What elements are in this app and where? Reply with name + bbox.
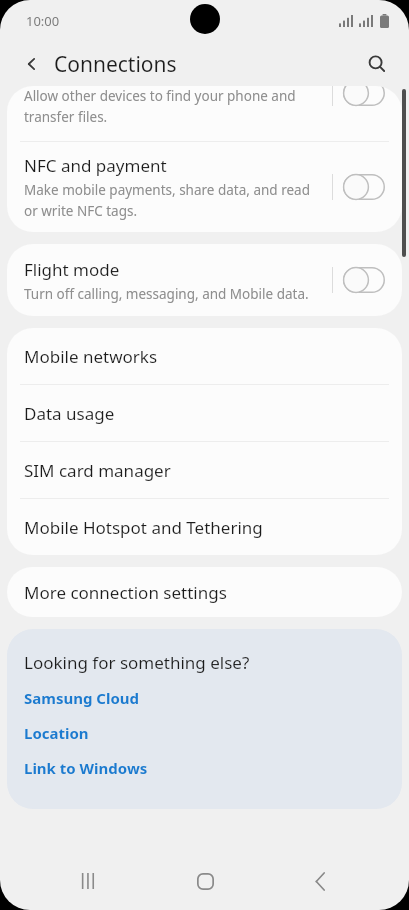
staticText: NFC and payment xyxy=(24,154,167,177)
staticText: 10:00 xyxy=(26,12,60,30)
button[interactable]: SIM card manager xyxy=(7,442,402,498)
button[interactable]: Location xyxy=(7,715,402,750)
staticText: Make mobile payments, share data, and re… xyxy=(24,181,310,199)
button[interactable]: Flight mode xyxy=(7,244,402,316)
staticText: Link to Windows xyxy=(24,758,148,778)
button[interactable]: Recents xyxy=(63,855,115,907)
staticText: Location xyxy=(24,723,89,743)
button[interactable]: Samsung Cloud xyxy=(7,680,402,715)
button[interactable]: Data usage xyxy=(7,385,402,441)
staticText: Mobile networks xyxy=(24,345,158,368)
button[interactable]: Toggle xyxy=(332,166,385,208)
staticText: or write NFC tags. xyxy=(24,202,138,220)
button[interactable]: Search xyxy=(355,42,399,86)
button[interactable]: Allow other devices to find your phone a… xyxy=(7,86,402,141)
staticText: Samsung Cloud xyxy=(24,688,139,708)
button[interactable]: NFC and payment xyxy=(7,142,402,232)
staticText: Looking for something else? xyxy=(24,651,250,674)
button[interactable]: More connection settings xyxy=(7,567,402,617)
staticText: Connections xyxy=(54,50,177,79)
staticText: Turn off calling, messaging, and Mobile … xyxy=(24,285,309,303)
button[interactable]: Link to Windows xyxy=(7,750,402,785)
button[interactable]: Home xyxy=(179,855,231,907)
staticText: SIM card manager xyxy=(24,459,171,482)
staticText: Flight mode xyxy=(24,258,120,281)
button[interactable]: Toggle xyxy=(332,259,385,301)
staticText: Data usage xyxy=(24,402,115,425)
button[interactable]: Back xyxy=(10,42,54,86)
button[interactable]: Mobile Hotspot and Tethering xyxy=(7,499,402,555)
staticText: Allow other devices to find your phone a… xyxy=(24,87,296,105)
staticText: transfer files. xyxy=(24,108,108,126)
button[interactable]: Back xyxy=(294,855,346,907)
staticText: Mobile Hotspot and Tethering xyxy=(24,516,263,539)
button[interactable]: Toggle xyxy=(332,86,385,114)
staticText: More connection settings xyxy=(24,581,227,604)
button[interactable]: Mobile networks xyxy=(7,328,402,384)
